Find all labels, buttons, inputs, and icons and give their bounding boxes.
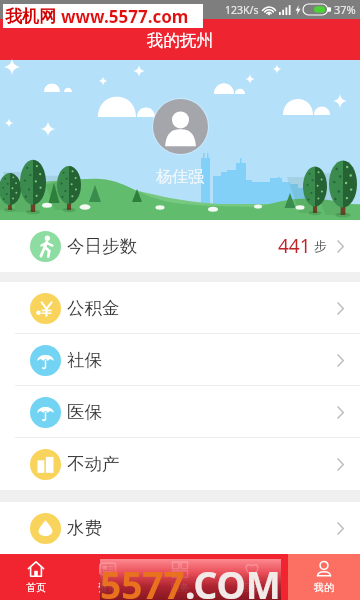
staticText: 441 (278, 233, 311, 259)
staticText: 医保 (67, 401, 102, 423)
button[interactable]: 水费 (0, 502, 360, 554)
staticText: 我的抚州 (147, 30, 213, 51)
staticText: 5577 (100, 559, 185, 600)
staticText: .COM (185, 559, 281, 600)
button[interactable]: Avatar (153, 99, 208, 154)
staticText: www.5577.com (61, 5, 189, 28)
button[interactable]: 互动 (216, 554, 288, 600)
staticText: 步 (314, 238, 327, 254)
staticText: 首页 (26, 581, 46, 594)
staticText: 我机网 (5, 6, 56, 27)
button[interactable]: 首页 (0, 554, 72, 600)
staticText: 123K/s (225, 3, 259, 17)
staticText: 资讯 (98, 581, 118, 594)
staticText: 杨佳强 (156, 167, 204, 187)
button[interactable]: 社保 (0, 334, 360, 386)
staticText: 公积金 (67, 297, 120, 319)
button[interactable]: 医保 (0, 386, 360, 438)
staticText: 社保 (67, 349, 102, 371)
staticText: 我的 (314, 581, 334, 594)
staticText: 服务 (170, 581, 190, 594)
button[interactable]: 服务 (144, 554, 216, 600)
button[interactable]: 今日步数 (0, 220, 360, 272)
button[interactable]: 不动产 (0, 438, 360, 490)
staticText: 37% (334, 2, 356, 17)
staticText: 互动 (242, 581, 262, 594)
staticText: 不动产 (67, 453, 120, 475)
staticText: 水费 (67, 517, 102, 539)
button[interactable]: 公积金 (0, 282, 360, 334)
staticText: 今日步数 (67, 235, 137, 257)
button[interactable]: 资讯 (72, 554, 144, 600)
button[interactable]: 我的 (288, 554, 360, 600)
